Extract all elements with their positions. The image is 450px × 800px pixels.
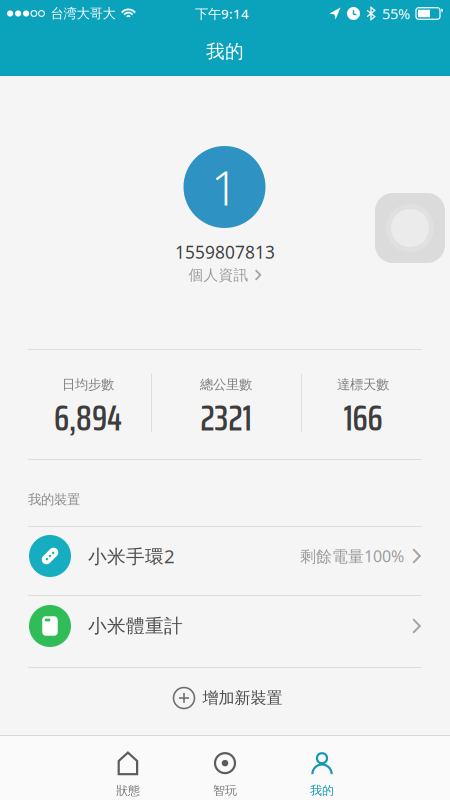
- button[interactable]: 增加新裝置: [0, 665, 450, 731]
- staticText: 小米手環2: [88, 544, 175, 568]
- button[interactable]: 狀態: [79, 736, 176, 800]
- staticText: 智玩: [213, 783, 237, 798]
- staticText: 我的裝置: [28, 491, 80, 508]
- button[interactable]: Profile photo: [183, 146, 265, 228]
- staticText: 剩餘電量100%: [300, 545, 404, 567]
- staticText: 總公里數: [200, 376, 252, 393]
- staticText: 我的: [206, 40, 244, 63]
- button[interactable]: 小米手環2: [0, 521, 450, 591]
- staticText: 台湾大哥大: [50, 5, 115, 22]
- staticText: 166: [343, 390, 382, 446]
- button[interactable]: 智玩: [176, 736, 273, 800]
- staticText: 日均步數: [62, 376, 114, 393]
- staticText: 我的: [310, 783, 334, 798]
- staticText: 下午9:14: [195, 5, 249, 22]
- button[interactable]: 小米體重計: [0, 591, 450, 661]
- button[interactable]: 我的: [273, 736, 370, 800]
- button[interactable]: 個人資訊: [188, 266, 261, 284]
- staticText: 個人資訊: [188, 266, 248, 284]
- staticText: 增加新裝置: [202, 688, 282, 708]
- staticText: 1: [211, 155, 238, 219]
- staticText: 狀態: [116, 783, 140, 798]
- staticText: 1559807813: [175, 240, 275, 263]
- staticText: 達標天數: [337, 376, 389, 393]
- staticText: 6,894: [54, 390, 122, 446]
- staticText: 小米體重計: [88, 614, 183, 637]
- staticText: 55%: [382, 4, 410, 23]
- staticText: 2321: [200, 390, 251, 446]
